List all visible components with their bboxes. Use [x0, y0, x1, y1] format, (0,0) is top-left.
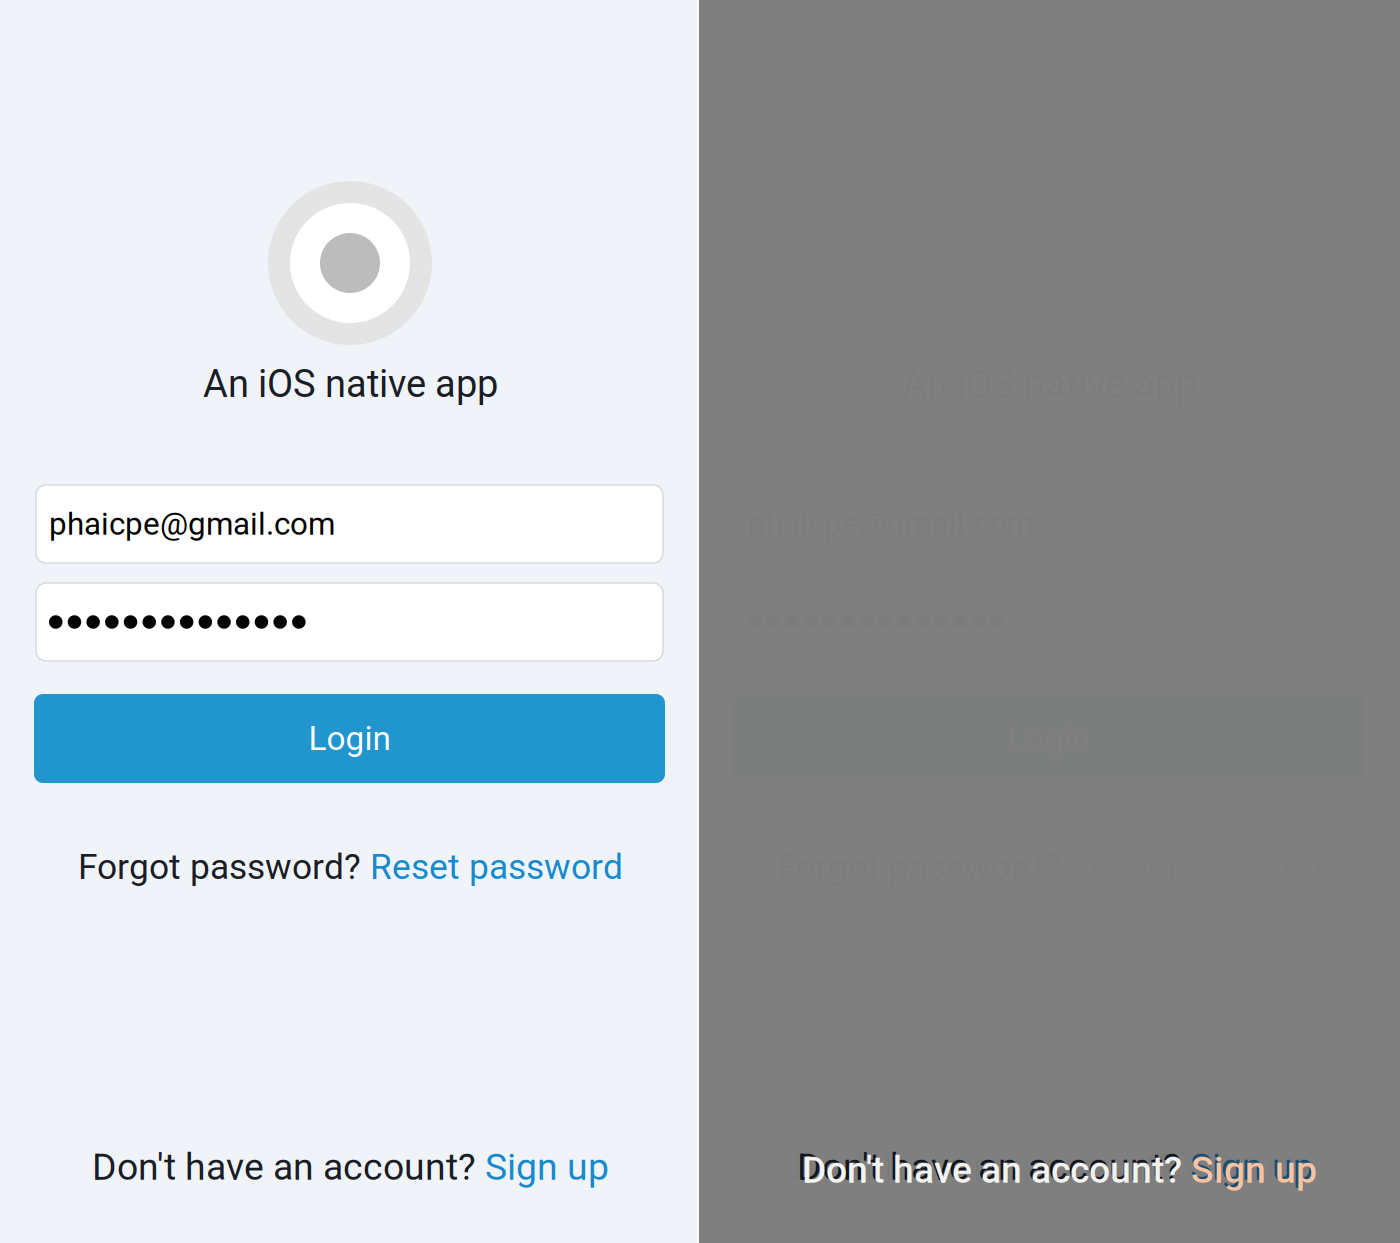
staticText: Login: [308, 719, 390, 758]
staticText: Reset password: [370, 846, 623, 888]
staticText: Don't have an account?: [797, 1145, 1190, 1189]
staticText: phaicpe@gmail.com: [49, 506, 335, 542]
staticText: Don't have an account?: [791, 1145, 1184, 1189]
staticText: Don't have an account?: [802, 1148, 1191, 1192]
staticText: Sign up: [1190, 1145, 1314, 1189]
staticText: Forgot password?: [78, 846, 370, 888]
staticText: Sign up: [485, 1145, 609, 1189]
button[interactable]: Email: [36, 485, 663, 563]
staticText: An iOS native app: [203, 362, 498, 406]
button[interactable]: Login: [34, 694, 665, 783]
button[interactable]: Sign up: [485, 1145, 609, 1189]
button[interactable]: Reset password: [370, 846, 623, 888]
button[interactable]: Sign up: [1184, 1145, 1308, 1189]
staticText: Sign up: [1191, 1148, 1317, 1192]
button[interactable]: Password: [36, 583, 663, 661]
button[interactable]: Sign up: [1191, 1148, 1317, 1192]
staticText: Don't have an account?: [92, 1145, 485, 1189]
staticText: Sign up: [1184, 1145, 1308, 1189]
button[interactable]: Sign up: [1190, 1145, 1314, 1189]
